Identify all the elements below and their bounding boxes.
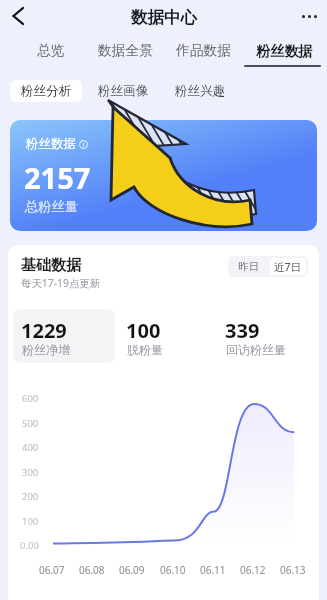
staticText: 200 xyxy=(22,490,39,503)
staticText: 06.13 xyxy=(280,563,306,577)
staticText: 粉丝净增 xyxy=(22,342,70,357)
staticText: 06.12 xyxy=(240,563,266,577)
staticText: 粉丝画像 xyxy=(98,83,149,99)
button[interactable] xyxy=(246,36,320,68)
staticText: 回访粉丝量 xyxy=(226,342,286,357)
staticText: 粉丝数据 xyxy=(256,42,313,60)
staticText: 06.08 xyxy=(79,563,105,577)
staticText: 06.10 xyxy=(160,563,186,577)
staticText: 06.07 xyxy=(39,563,65,577)
button[interactable]: More options xyxy=(291,0,327,32)
button[interactable]: 粉丝兴趣 xyxy=(164,80,236,102)
staticText: 粉丝兴趣 xyxy=(175,83,226,99)
staticText: 昨日 xyxy=(238,260,259,273)
staticText: 1229 xyxy=(21,317,67,344)
staticText: 0.00 xyxy=(20,539,39,552)
button[interactable] xyxy=(25,36,75,64)
button[interactable]: 昨日 xyxy=(230,258,266,275)
button[interactable] xyxy=(168,36,238,64)
button[interactable]: 100 xyxy=(118,309,218,363)
staticText: 总粉丝量 xyxy=(25,198,78,215)
button[interactable]: 1229 xyxy=(13,309,115,363)
staticText: 2157 xyxy=(24,158,91,197)
button[interactable]: 339 xyxy=(217,309,317,363)
staticText: 作品数据 xyxy=(176,42,232,59)
button[interactable]: 近7日 xyxy=(270,258,306,275)
staticText: 粉丝数据 xyxy=(26,136,76,152)
staticText: 06.09 xyxy=(119,563,145,577)
button[interactable] xyxy=(90,36,160,64)
staticText: 100 xyxy=(22,515,39,528)
staticText: 近7日 xyxy=(274,260,302,274)
staticText: 数据全景 xyxy=(98,42,154,59)
button[interactable]: 粉丝画像 xyxy=(87,80,159,102)
staticText: 每天17-19点更新 xyxy=(21,276,101,290)
staticText: 粉丝分析 xyxy=(21,83,72,99)
staticText: 600 xyxy=(22,392,39,405)
button[interactable]: Back xyxy=(0,0,36,32)
staticText: 300 xyxy=(22,466,39,479)
staticText: 06.11 xyxy=(200,563,226,577)
staticText: 100 xyxy=(126,317,161,344)
staticText: 500 xyxy=(22,417,39,430)
staticText: 基础数据 xyxy=(21,256,81,275)
staticText: 脱粉量 xyxy=(127,342,163,357)
button[interactable]: 粉丝分析 xyxy=(10,80,82,102)
staticText: 400 xyxy=(22,441,39,454)
staticText: 总览 xyxy=(37,42,65,59)
button[interactable]: 粉丝数据 xyxy=(10,120,317,231)
staticText: 339 xyxy=(225,317,260,344)
staticText: 数据中心 xyxy=(131,7,197,28)
